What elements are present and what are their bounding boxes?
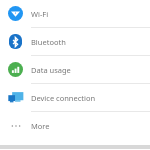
button[interactable]: More (0, 112, 150, 139)
staticText: Data usage (31, 65, 71, 75)
other: Data usage (8, 62, 23, 77)
other: More (9, 120, 23, 132)
button[interactable]: Device connection (0, 84, 150, 112)
other: Wi-Fi (8, 6, 23, 21)
other: Bluetooth (9, 34, 22, 49)
staticText: More (31, 121, 50, 131)
staticText: Bluetooth (31, 37, 66, 47)
other: Device connection (8, 91, 24, 105)
staticText: Device connection (31, 93, 96, 103)
button[interactable]: Wi-Fi (0, 0, 150, 28)
button[interactable]: Data usage (0, 56, 150, 84)
staticText: Wi-Fi (31, 9, 49, 19)
button[interactable]: Bluetooth (0, 28, 150, 56)
